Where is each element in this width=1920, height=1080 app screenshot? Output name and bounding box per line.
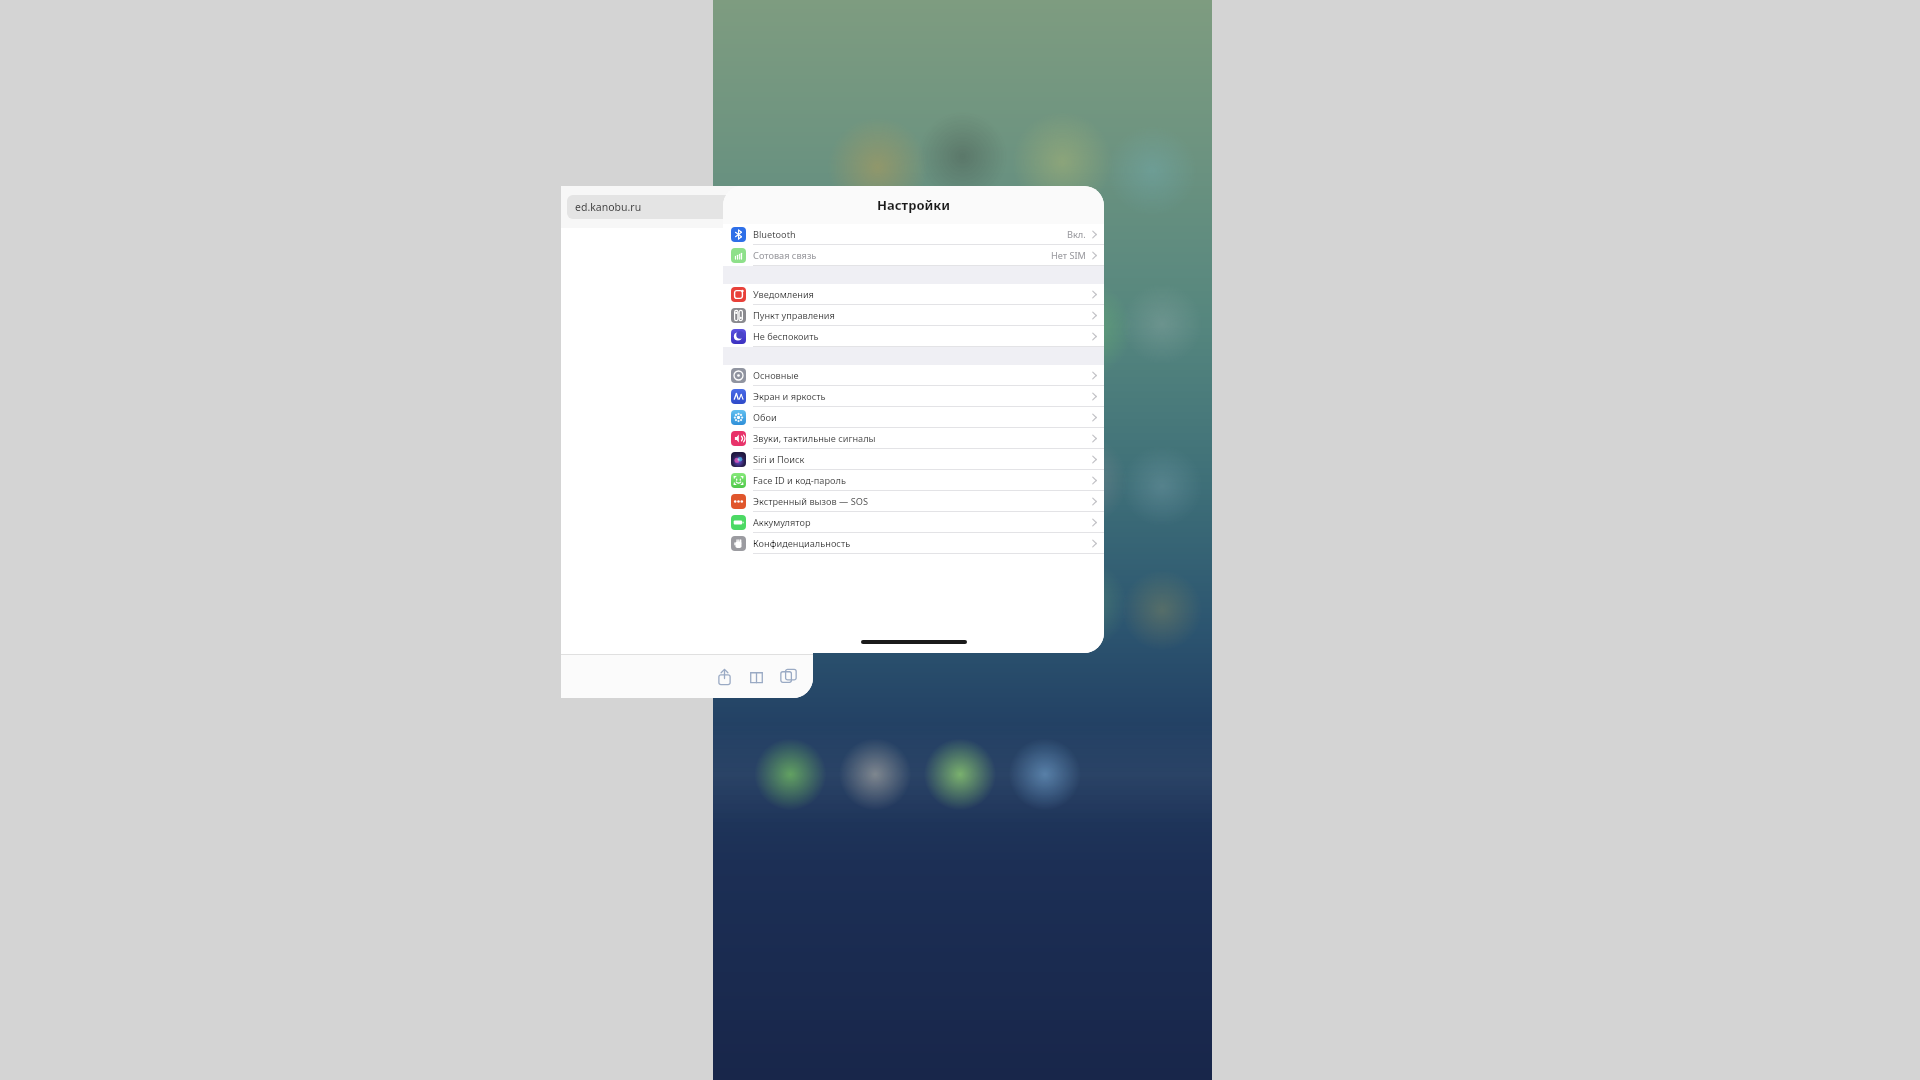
button[interactable]: ed.kanobu.ru <box>567 195 807 219</box>
staticText: ed.kanobu.ru <box>575 200 783 214</box>
staticText: Настройки <box>877 196 950 214</box>
button[interactable]: ed.kanobu.ru <box>561 186 813 698</box>
staticText: Нет SIM <box>1051 249 1086 262</box>
button[interactable]: Обои <box>723 407 1104 428</box>
staticText: Экстренный вызов — SOS <box>753 495 1092 508</box>
staticText: Аккумулятор <box>753 516 1092 529</box>
staticText: Уведомления <box>753 288 1092 301</box>
staticText: Экран и яркость <box>753 390 1092 403</box>
button[interactable]: Экран и яркость <box>723 386 1104 407</box>
button[interactable]: Экстренный вызов — SOS <box>723 491 1104 512</box>
button[interactable]: Конфиденциальность <box>723 533 1104 554</box>
staticText: Bluetooth <box>753 228 1067 241</box>
button[interactable]: Пункт управления <box>723 305 1104 326</box>
button[interactable]: Не беспокоить <box>723 326 1104 347</box>
staticText: Face ID и код-пароль <box>753 474 1092 487</box>
button[interactable]: Share <box>709 661 739 691</box>
button[interactable]: Настройки <box>723 186 1104 653</box>
staticText: Основные <box>753 369 1092 382</box>
button[interactable]: Tabs <box>773 661 803 691</box>
staticText: Не беспокоить <box>753 330 1092 343</box>
staticText: Звуки, тактильные сигналы <box>753 432 1092 445</box>
button[interactable]: Звуки, тактильные сигналы <box>723 428 1104 449</box>
button[interactable]: Основные <box>723 365 1104 386</box>
button[interactable]: Bookmarks <box>741 661 771 691</box>
staticText: Конфиденциальность <box>753 537 1092 550</box>
staticText: Siri и Поиск <box>753 453 1092 466</box>
staticText: Пункт управления <box>753 309 1092 322</box>
staticText: Сотовая связь <box>753 249 1051 262</box>
button[interactable]: Аккумулятор <box>723 512 1104 533</box>
button[interactable]: Face ID и код-пароль <box>723 470 1104 491</box>
button[interactable]: Siri и Поиск <box>723 449 1104 470</box>
staticText: Вкл. <box>1067 228 1086 241</box>
button[interactable]: Сотовая связь <box>723 245 1104 266</box>
button[interactable]: Bluetooth <box>723 224 1104 245</box>
button[interactable]: Уведомления <box>723 284 1104 305</box>
staticText: Обои <box>753 411 1092 424</box>
